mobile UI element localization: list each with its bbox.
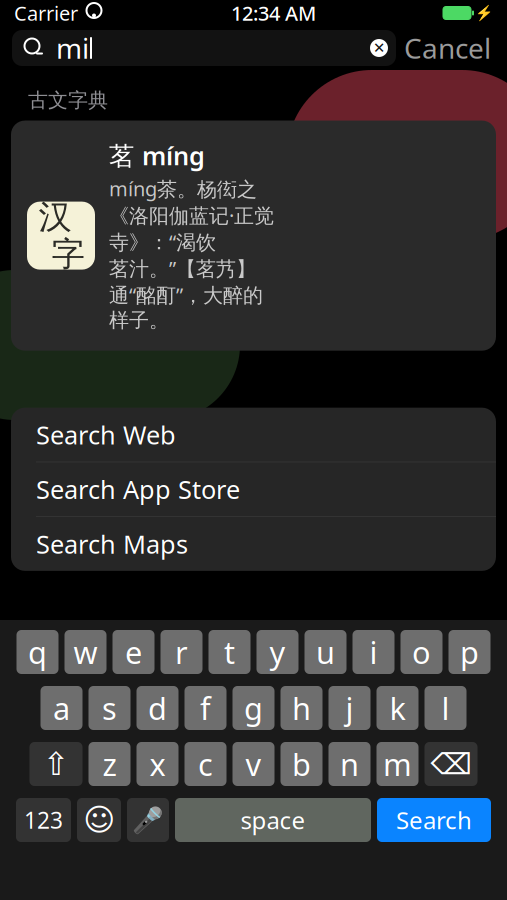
staticText: g (244, 688, 263, 728)
button[interactable]: b (280, 742, 322, 786)
button[interactable]: p (448, 630, 490, 674)
staticText: c (198, 744, 213, 784)
button[interactable]: Dictate (127, 798, 169, 842)
staticText: r (175, 632, 188, 672)
button[interactable]: Shift (29, 742, 82, 786)
button[interactable]: n (328, 742, 370, 786)
staticText: space (240, 804, 305, 836)
staticText: v (245, 744, 261, 784)
staticText: f (200, 688, 211, 728)
staticText: k (389, 688, 405, 728)
button[interactable]: l (424, 686, 466, 730)
staticText: y (269, 632, 285, 672)
button[interactable]: Search Maps (11, 517, 496, 571)
button[interactable]: a (40, 686, 82, 730)
staticText: o (412, 632, 431, 672)
button[interactable]: y (256, 630, 298, 674)
button[interactable]: 123 (16, 798, 71, 842)
button[interactable]: h (280, 686, 322, 730)
button[interactable]: Search Web (11, 408, 496, 462)
button[interactable]: m (376, 742, 418, 786)
staticText: Search Web (36, 418, 176, 451)
button[interactable]: Search (377, 798, 491, 842)
button[interactable]: u (304, 630, 346, 674)
staticText: ⚡ (475, 5, 493, 21)
staticText: b (292, 744, 311, 784)
staticText: u (316, 632, 335, 672)
staticText: t (224, 632, 235, 672)
button[interactable]: i (352, 630, 394, 674)
staticText: e (125, 632, 142, 672)
button[interactable]: w (64, 630, 106, 674)
button[interactable]: s (88, 686, 130, 730)
staticText: 12:34 AM (231, 0, 316, 26)
button[interactable]: v (232, 742, 274, 786)
button[interactable]: Search App Store (11, 462, 496, 517)
staticText: Carrier (14, 0, 78, 26)
staticText: m (383, 744, 412, 784)
button[interactable]: g (232, 686, 274, 730)
staticText: ⌫ (430, 747, 471, 781)
staticText: z (102, 744, 116, 784)
button[interactable]: j (328, 686, 370, 730)
button[interactable]: space (175, 798, 371, 842)
staticText: ✕ (373, 40, 385, 56)
staticText: 茗 míng (109, 139, 205, 172)
staticText: Search App Store (36, 472, 240, 506)
button[interactable]: e (112, 630, 154, 674)
staticText: w (73, 632, 97, 672)
staticText: Search (396, 804, 472, 836)
staticText: 123 (24, 805, 63, 835)
button[interactable]: x (136, 742, 178, 786)
staticText: mi (56, 29, 89, 67)
staticText: míng茶。杨衒之《洛阳伽蓝记·正觉寺》：“渴饮 茗汁。”【茗艿】通“酩酊”，大… (109, 175, 274, 333)
staticText: j (345, 688, 353, 728)
staticText: ☺ (83, 803, 115, 837)
button[interactable]: f (184, 686, 226, 730)
button[interactable]: o (400, 630, 442, 674)
button[interactable]: d (136, 686, 178, 730)
staticText: 🎤 (132, 805, 164, 834)
button[interactable]: k (376, 686, 418, 730)
staticText: h (292, 688, 311, 728)
button[interactable]: r (160, 630, 202, 674)
button[interactable]: 汉 (11, 121, 496, 351)
button[interactable]: t (208, 630, 250, 674)
button[interactable]: Cancel (396, 30, 499, 66)
staticText: 古文字典 (28, 88, 108, 113)
button[interactable]: Emoji (77, 798, 121, 842)
staticText: n (340, 744, 359, 784)
staticText: Search Maps (36, 527, 188, 561)
staticText: l (441, 688, 449, 728)
staticText: a (53, 688, 70, 728)
staticText: ⇧ (42, 746, 69, 782)
staticText: s (102, 688, 117, 728)
staticText: d (148, 688, 167, 728)
button[interactable]: c (184, 742, 226, 786)
staticText: 汉 (38, 197, 71, 238)
button[interactable]: Clear text (362, 31, 396, 65)
staticText: q (28, 632, 47, 672)
staticText: i (369, 632, 377, 672)
staticText: x (149, 744, 165, 784)
staticText: p (460, 632, 479, 672)
staticText: Cancel (404, 29, 491, 67)
button[interactable]: z (88, 742, 130, 786)
button[interactable]: q (16, 630, 58, 674)
button[interactable]: Delete (424, 742, 477, 786)
staticText: 字 (51, 234, 84, 274)
